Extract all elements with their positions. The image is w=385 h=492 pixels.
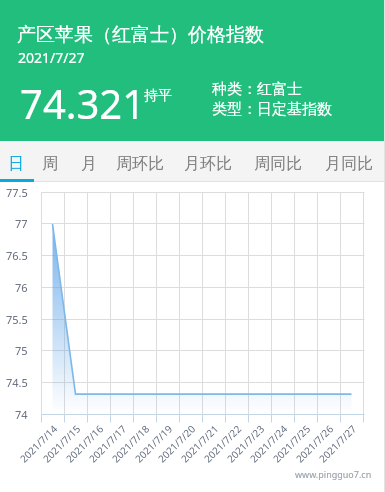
- staticText: 周同比: [254, 154, 302, 174]
- staticText: 周环比: [116, 154, 164, 174]
- button[interactable]: 周: [31, 141, 68, 182]
- staticText: 产区苹果（红富士）价格指数: [17, 23, 264, 47]
- button[interactable]: 月: [68, 141, 109, 182]
- staticText: 种类：红富士: [212, 80, 302, 99]
- button[interactable]: 周同比: [244, 141, 312, 182]
- staticText: 2021/7/27: [18, 48, 85, 67]
- staticText: 月环比: [184, 154, 232, 174]
- button[interactable]: 月同比: [312, 141, 385, 182]
- staticText: 74.321: [20, 76, 146, 130]
- staticText: 周: [42, 154, 58, 174]
- staticText: 日: [8, 154, 24, 174]
- staticText: 月: [81, 154, 97, 174]
- staticText: 持平: [144, 87, 172, 105]
- staticText: 月同比: [325, 154, 373, 174]
- button[interactable]: 日: [0, 141, 31, 182]
- staticText: 类型：日定基指数: [212, 100, 332, 119]
- button[interactable]: 月环比: [171, 141, 244, 182]
- button[interactable]: 周环比: [109, 141, 171, 182]
